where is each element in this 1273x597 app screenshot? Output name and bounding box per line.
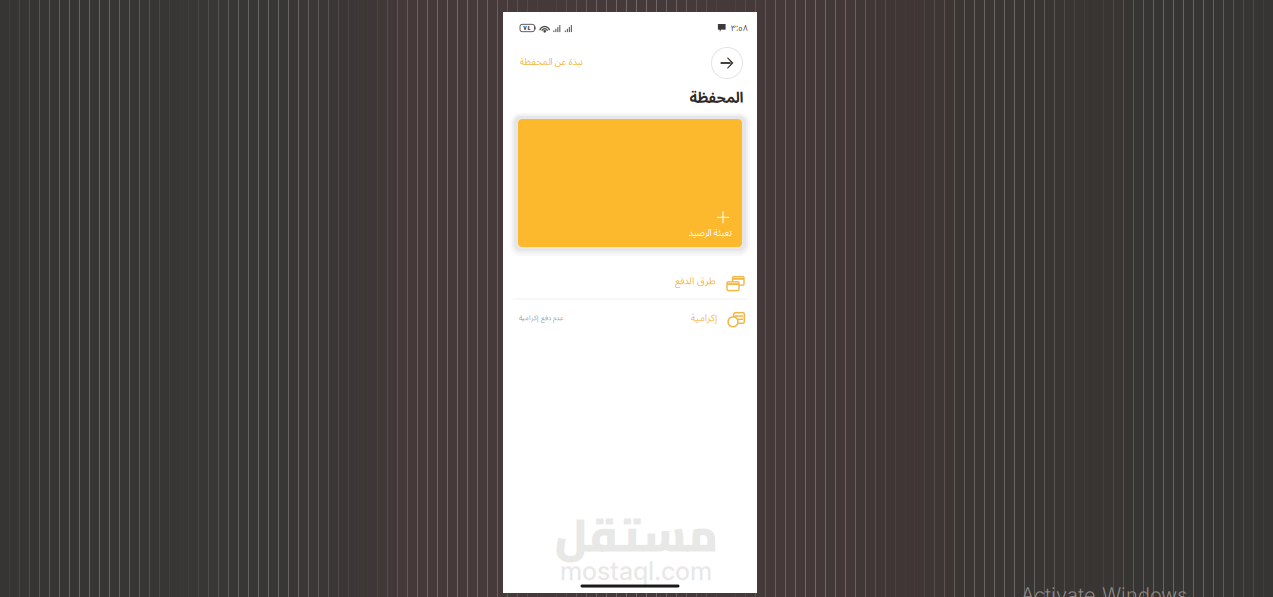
- staticText: إكرامية: [690, 308, 716, 328]
- staticText: ٧٤: [523, 21, 531, 34]
- button[interactable]: عدم دفع إكرامية: [518, 300, 741, 336]
- staticText: عدم دفع إكرامية: [518, 311, 562, 325]
- staticText: ٣:٥٨: [731, 19, 748, 37]
- staticText: mostaql.com: [560, 556, 712, 586]
- staticText: Activate Windows: [1021, 583, 1187, 597]
- button[interactable]: Back: [711, 47, 742, 78]
- staticText: المحفظة: [689, 82, 743, 113]
- button[interactable]: نبذة عن المحفظة: [519, 54, 599, 70]
- staticText: نبذة عن المحفظة: [519, 52, 583, 72]
- staticText: تعبئة الرصيد: [688, 223, 732, 243]
- staticText: مستقل: [554, 492, 718, 577]
- button[interactable]: طرق الدفع: [518, 263, 741, 299]
- button[interactable]: تعبئة الرصيد: [518, 119, 742, 247]
- staticText: طرق الدفع: [674, 271, 715, 291]
